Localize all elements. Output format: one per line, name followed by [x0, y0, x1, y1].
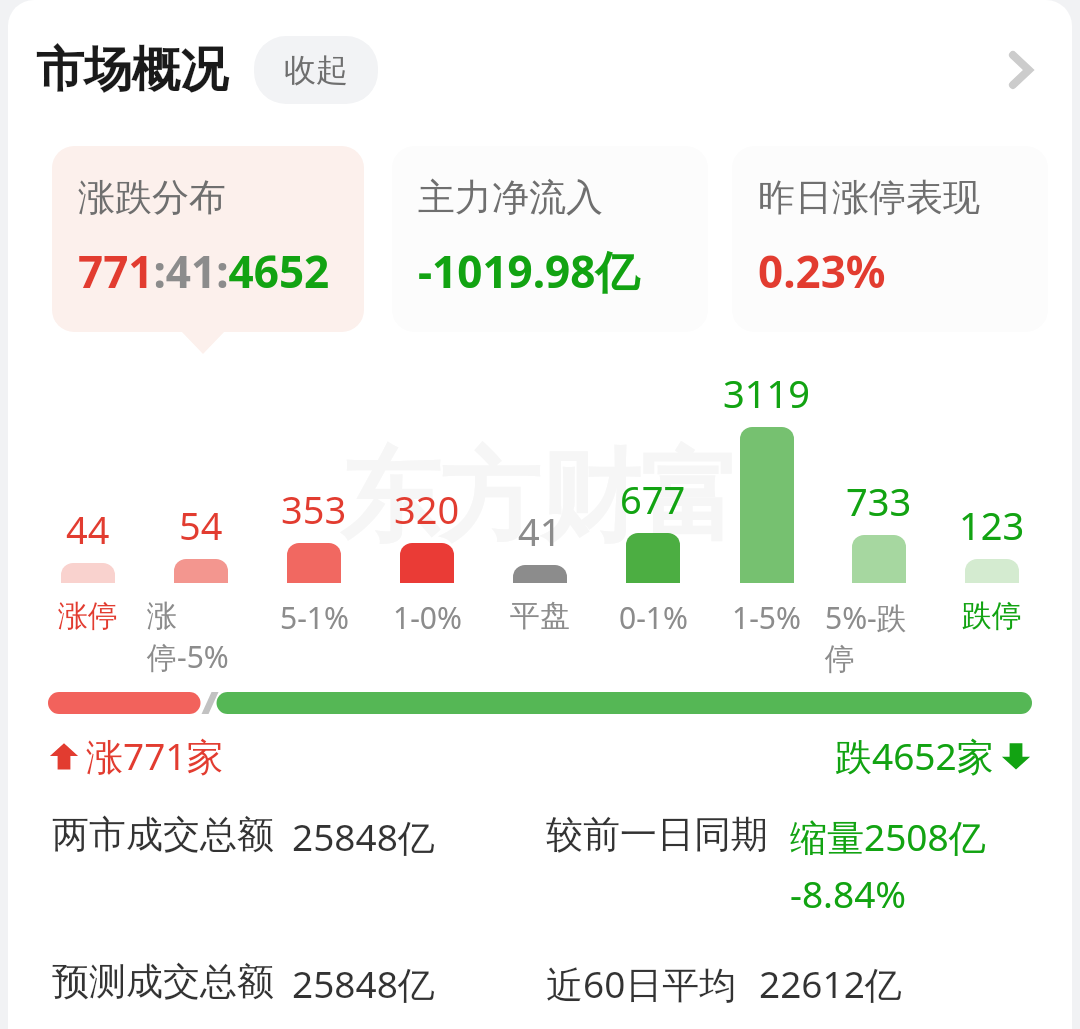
staticText: 涨跌分布 [78, 174, 226, 221]
staticText: 市场概况 [36, 40, 228, 100]
staticText: 771:41:4652 [78, 241, 330, 301]
button[interactable]: 收起 [254, 36, 378, 104]
staticText: 近60日平均 [546, 958, 737, 1009]
staticText: 25848亿 [292, 811, 435, 862]
button[interactable]: 733 [825, 367, 933, 678]
button[interactable]: 涨771家 [48, 730, 224, 781]
staticText: 677 [620, 473, 686, 525]
staticText: 0.23% [758, 241, 886, 301]
staticText: 5%-跌停 [825, 597, 933, 678]
staticText: 较前一日同期 [546, 811, 768, 858]
staticText: 涨停-5% [147, 597, 255, 677]
staticText: 5-1% [280, 597, 349, 638]
button[interactable]: 353 [260, 367, 368, 638]
staticText: 353 [281, 483, 347, 535]
staticText: 0-1% [619, 597, 688, 638]
button[interactable]: 昨日涨停表现 [732, 146, 1048, 332]
staticText: 1-5% [732, 597, 801, 638]
button[interactable]: 展开更多 [988, 38, 1052, 102]
staticText: 昨日涨停表现 [758, 174, 980, 221]
button[interactable]: 41 [486, 367, 594, 635]
button[interactable]: 677 [599, 367, 707, 638]
staticText: 东方财富 [340, 435, 740, 561]
staticText: 跌停 [962, 597, 1022, 635]
staticText: 320 [394, 483, 460, 535]
button[interactable]: 主力净流入 [392, 146, 708, 332]
staticText: 涨771家 [86, 730, 224, 781]
staticText: 收起 [284, 50, 348, 90]
staticText: 3119 [723, 367, 810, 419]
button[interactable]: 涨跌分布 [52, 146, 364, 332]
staticText: -1019.98亿 [418, 241, 640, 301]
staticText: 41 [518, 505, 562, 557]
button[interactable]: 320 [373, 367, 481, 638]
button[interactable]: 预测成交总额 [52, 958, 1072, 1029]
staticText: 平盘 [510, 597, 570, 635]
staticText: 预测成交总额 [52, 958, 274, 1005]
staticText: 1-0% [393, 597, 462, 638]
button[interactable] [48, 692, 1032, 714]
staticText: 跌4652家 [835, 730, 994, 781]
button[interactable]: 44 [34, 367, 142, 635]
button[interactable]: 3119 [712, 367, 820, 638]
staticText: 733 [846, 475, 912, 527]
button[interactable]: 123 [938, 367, 1046, 635]
staticText: 123 [959, 499, 1025, 551]
button[interactable]: 两市成交总额 [52, 811, 1072, 918]
staticText: 主力净流入 [418, 174, 603, 221]
staticText: 涨停 [58, 597, 118, 635]
button[interactable]: 54 [147, 367, 255, 677]
staticText: 22612亿 [759, 958, 902, 1009]
staticText: 54 [179, 499, 223, 551]
staticText: 44 [66, 503, 110, 555]
staticText: 缩量2508亿 [790, 811, 986, 862]
button[interactable]: 跌4652家 [835, 730, 1032, 781]
staticText: -8.84% [790, 868, 907, 918]
staticText: 两市成交总额 [52, 811, 274, 858]
staticText: 25848亿 [292, 958, 435, 1009]
